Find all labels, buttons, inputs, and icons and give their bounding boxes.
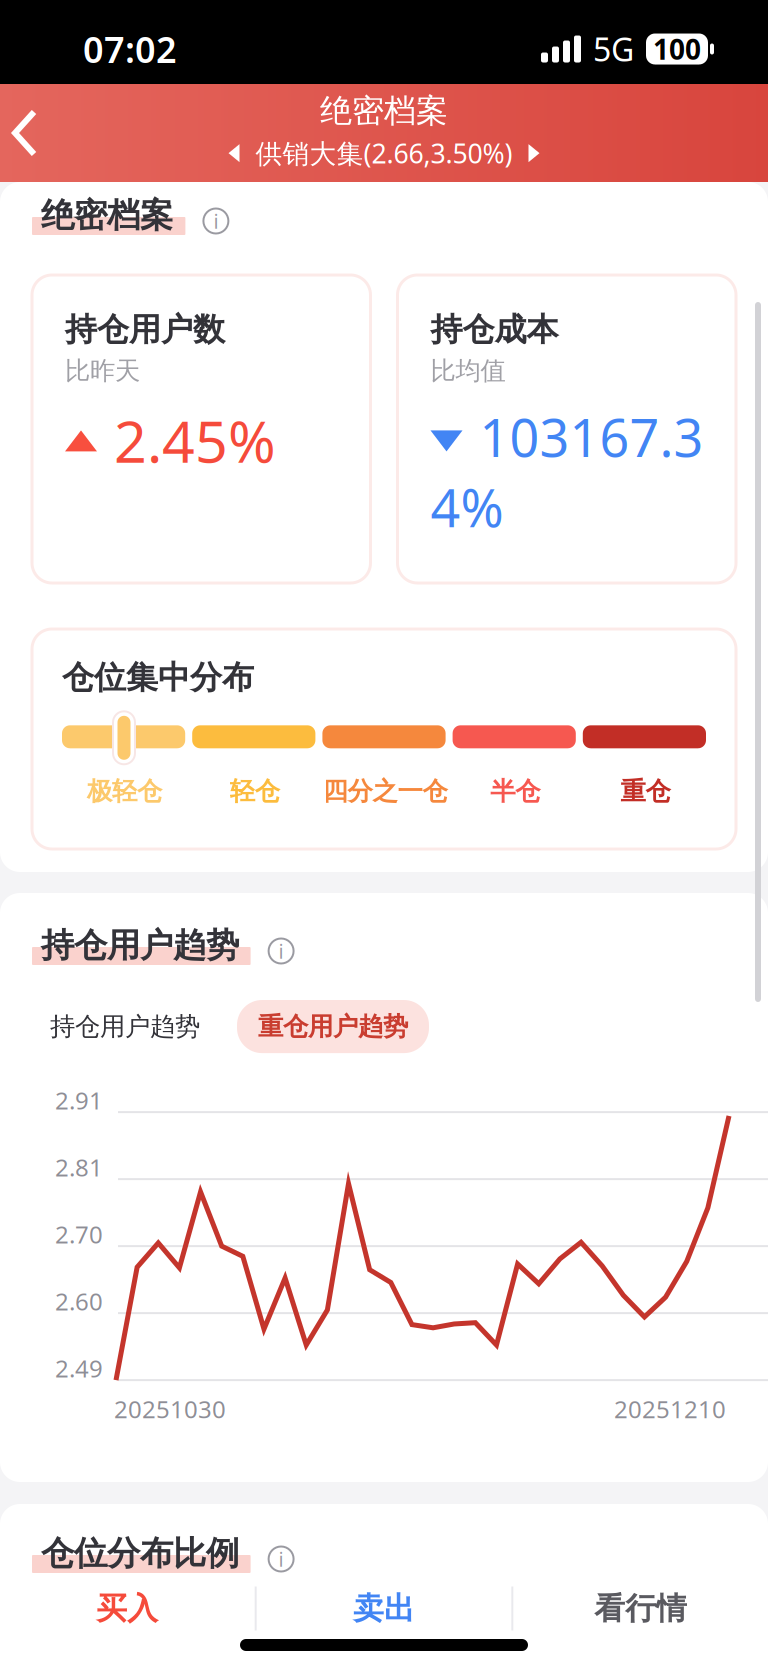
button[interactable]: 持仓用户趋势 (28, 999, 222, 1054)
staticText: 2.91 (55, 1084, 103, 1116)
button[interactable]: 买入 (0, 1580, 255, 1637)
staticText: 比昨天 (65, 355, 140, 386)
button[interactable]: 关于仓位分布比例 (269, 1546, 294, 1571)
staticText: 仓位集中分布 (62, 658, 254, 697)
staticText: 买入 (96, 1590, 158, 1627)
staticText: 卖出 (353, 1590, 415, 1627)
staticText: 2.60 (55, 1285, 103, 1317)
staticText: 看行情 (594, 1590, 687, 1627)
staticText: 4% (430, 472, 503, 542)
staticText: i (279, 938, 284, 964)
button[interactable]: 看行情 (513, 1580, 768, 1637)
staticText: 半仓 (490, 776, 540, 807)
button[interactable]: 关于持仓用户趋势 (269, 938, 294, 963)
staticText: 持仓用户数 (65, 310, 225, 349)
staticText: i (213, 208, 218, 234)
staticText: 仓位分布比例 (41, 1533, 239, 1574)
staticText: 07:02 (83, 25, 177, 73)
staticText: 20251210 (614, 1393, 726, 1425)
button[interactable]: 重仓用户趋势 (237, 1000, 429, 1053)
staticText: 持仓用户趋势 (41, 925, 239, 966)
button[interactable]: 关于绝密档案 (203, 208, 228, 233)
staticText: 比均值 (430, 355, 505, 386)
staticText: 100 (653, 30, 701, 68)
staticText: 2.49 (55, 1352, 103, 1384)
staticText: 供销大集(2.66,3.50%) (255, 135, 512, 171)
staticText: 2.81 (55, 1151, 103, 1183)
staticText: 四分之一仓 (322, 776, 447, 807)
staticText: 绝密档案 (320, 91, 448, 130)
staticText: 重仓用户趋势 (258, 1011, 408, 1042)
staticText: 极轻仓 (87, 776, 162, 807)
staticText: 2.45% (114, 402, 276, 478)
staticText: 绝密档案 (41, 195, 173, 236)
staticText: 103167.3 (479, 402, 703, 471)
staticText: 持仓用户趋势 (50, 1011, 200, 1042)
staticText: 5G (593, 28, 634, 70)
staticText: 轻仓 (230, 776, 280, 807)
staticText: 持仓成本 (430, 310, 558, 349)
staticText: 重仓 (620, 776, 670, 807)
button[interactable]: Back (0, 93, 80, 173)
button[interactable]: 卖出 (257, 1580, 511, 1637)
staticText: 2.70 (55, 1218, 103, 1250)
staticText: i (279, 1546, 284, 1572)
staticText: 20251030 (114, 1393, 226, 1425)
